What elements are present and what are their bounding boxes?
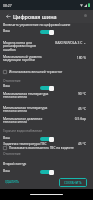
button[interactable]: СОХРАНИТЬ	[59, 178, 87, 187]
staticText: Модель котла для расшифровки кодов ошибо…	[3, 40, 47, 52]
staticText: Максимальная температура теплоносителя	[3, 91, 49, 99]
staticText: Горячее водоснабжение	[3, 128, 43, 132]
staticText: 45 °C	[77, 141, 86, 145]
staticText: BAXI NUVOLA 3 C ⌄	[55, 40, 86, 44]
button[interactable]: Ваш	[3, 28, 33, 32]
staticText: 90 °C	[77, 91, 86, 95]
staticText: Заданная температура ГВС	[3, 141, 47, 145]
button[interactable]: Максимальная температура теплоносителя	[3, 91, 49, 99]
staticText: Второй контур	[3, 161, 27, 165]
button[interactable]: Максимальный уровень модуляции горелки	[3, 54, 47, 62]
button[interactable]: Использовать внешний термостат	[3, 70, 75, 74]
button[interactable]: Toggle	[40, 136, 54, 142]
button[interactable]: Back	[3, 11, 13, 21]
staticText: 08:27	[3, 3, 12, 8]
button[interactable]: Ваш	[3, 168, 33, 172]
button[interactable]: УДАЛИТЬ	[3, 178, 22, 186]
button[interactable]: Минимальная температура теплоносителя	[3, 105, 49, 113]
button[interactable]: Toggle	[40, 85, 54, 91]
staticText: Отопление	[3, 78, 21, 82]
button[interactable]: Включить управление по цифровой шине	[3, 22, 89, 26]
staticText: Показывать выключатель ГВС на виджете	[9, 146, 74, 150]
staticText: 0.5 бар	[74, 116, 86, 120]
staticText: Максимальный уровень модуляции горелки	[3, 54, 47, 62]
button[interactable]: Toggle	[40, 29, 54, 35]
button[interactable]: Ваш	[3, 135, 33, 139]
button[interactable]: Ваш	[3, 83, 33, 87]
staticText: Минимальное давление теплоносителя	[3, 116, 49, 124]
button[interactable]: Минимальное давление теплоносителя	[3, 116, 49, 124]
staticText: Цифровая шина	[13, 13, 57, 20]
button[interactable]: Показывать выключатель ГВС на виджете	[3, 146, 85, 150]
staticText: 45 °C	[77, 106, 86, 110]
staticText: Использовать внешний термостат	[9, 70, 63, 74]
staticText: Включить управление по цифровой шине	[3, 22, 71, 26]
staticText: Отопление	[3, 151, 21, 155]
button[interactable]: Модель котла для расшифровки кодов ошибо…	[3, 40, 47, 52]
staticText: Ваш	[3, 83, 10, 87]
staticText: Минимальная температура теплоносителя	[3, 105, 49, 113]
button[interactable]: Второй контур	[3, 161, 43, 165]
button[interactable]: Заданная температура ГВС	[3, 141, 49, 145]
button[interactable]: More options	[81, 11, 90, 20]
staticText: Ваш	[3, 168, 10, 172]
staticText: 180 %	[76, 55, 86, 59]
staticText: Ваш	[3, 28, 10, 32]
staticText: Ваш	[3, 135, 10, 139]
button[interactable]: Toggle	[40, 169, 54, 175]
staticText: УДАЛИТЬ	[5, 180, 20, 184]
staticText: СОХРАНИТЬ	[64, 181, 82, 185]
